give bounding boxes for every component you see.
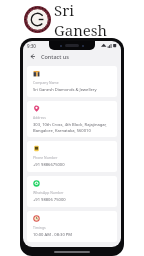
staticText: 303, 10th Cross, 4th Block, Rajajinagar,… <box>33 122 112 133</box>
other: WhatsApp <box>33 180 40 187</box>
other: Location <box>33 105 40 112</box>
staticText: Sri Ganesh Diamonds & Jewellery <box>33 87 97 93</box>
staticText: 9:30 <box>27 43 36 49</box>
staticText: 10:00 AM - 08:30 PM <box>33 232 73 238</box>
button[interactable]: Back <box>27 51 38 62</box>
staticText: Timings <box>33 225 46 230</box>
other: Shop <box>33 70 40 77</box>
staticText: Contact us <box>41 53 69 60</box>
staticText: Phone Number <box>33 155 58 160</box>
button[interactable]: Timings <box>27 211 117 242</box>
staticText: Company Name <box>33 80 59 85</box>
button[interactable]: Location <box>27 101 117 137</box>
other: Timings <box>33 215 40 222</box>
staticText: Address <box>33 115 46 120</box>
staticText: WhatsApp Number <box>33 190 64 195</box>
staticText: +91 98806 75000 <box>33 197 66 203</box>
other: Call <box>33 145 40 152</box>
button[interactable]: Call <box>27 141 117 172</box>
staticText: Sri Ganesh <box>54 0 130 38</box>
staticText: +91 9886675000 <box>33 162 65 168</box>
button[interactable]: WhatsApp <box>27 176 117 207</box>
button[interactable]: Shop <box>27 66 117 97</box>
